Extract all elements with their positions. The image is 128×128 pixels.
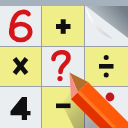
- button[interactable]: Math puzzle game icon: [0, 0, 128, 128]
